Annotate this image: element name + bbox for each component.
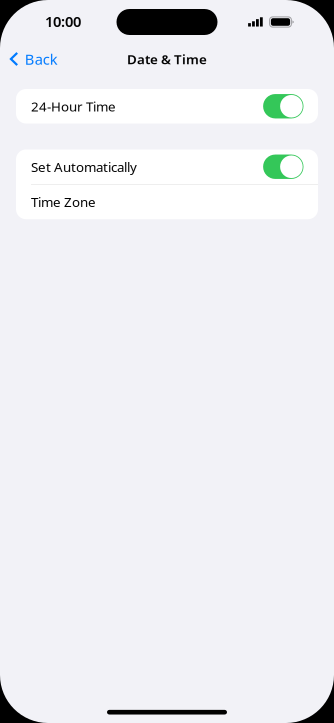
staticText: Time Zone (31, 193, 96, 211)
button[interactable]: 24-Hour Time (16, 89, 318, 123)
staticText: 10:00 (45, 12, 81, 31)
staticText: Date & Time (127, 50, 207, 68)
staticText: 24-Hour Time (31, 97, 116, 115)
button[interactable]: Back (0, 44, 58, 74)
staticText: Set Automatically (31, 158, 137, 176)
button[interactable]: Time Zone (16, 185, 318, 219)
staticText: Back (25, 49, 58, 69)
button[interactable]: Set Automatically (16, 149, 318, 184)
